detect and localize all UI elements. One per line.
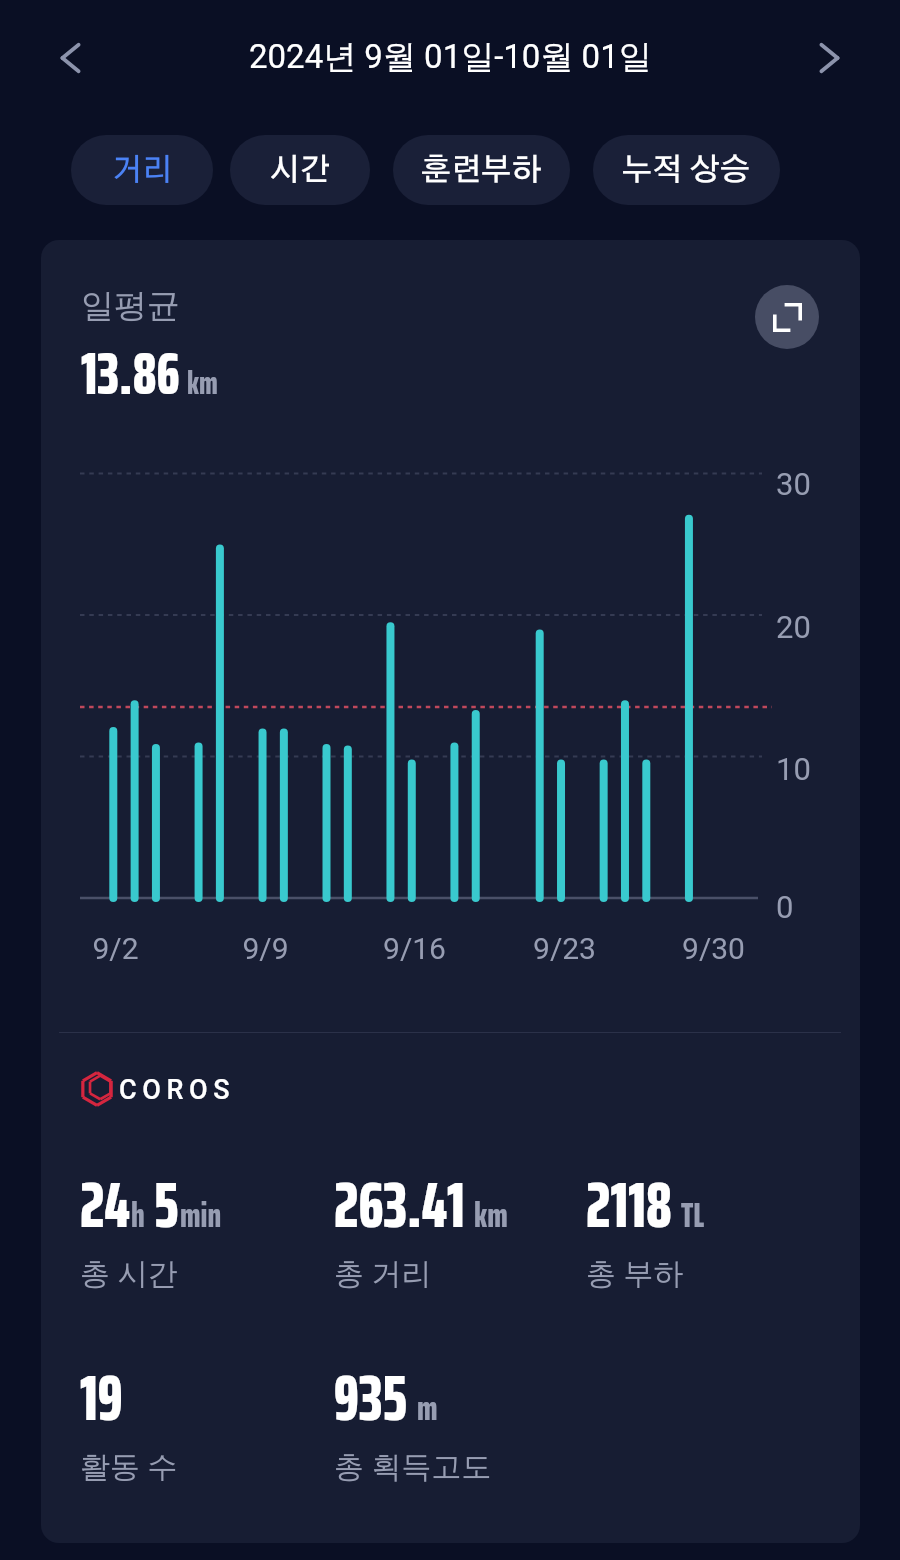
button[interactable]: 거리 (71, 135, 213, 205)
staticText: 총 부하 (586, 1255, 684, 1293)
staticText: 30 (776, 466, 811, 502)
staticText: 시간 (270, 155, 331, 186)
staticText: 9/16 (383, 931, 446, 966)
staticText: 총 시간 (80, 1255, 178, 1293)
button[interactable]: Next period (789, 22, 861, 94)
staticText: 935 (334, 1347, 408, 1448)
staticText: 10 (776, 751, 811, 787)
staticText: 누적 상승 (622, 155, 751, 186)
staticText: 총 거리 (334, 1255, 432, 1293)
button[interactable]: 시간 (230, 135, 370, 205)
button[interactable]: Expand chart (755, 285, 819, 349)
staticText: 263.41 (334, 1154, 465, 1255)
staticText: 9/2 (92, 931, 139, 966)
staticText: 2118 (586, 1154, 672, 1255)
staticText: 24 (80, 1154, 130, 1255)
staticText: 20 (776, 609, 811, 645)
staticText: 거리 (112, 155, 173, 186)
staticText: COROS (119, 1074, 236, 1106)
staticText: 9/30 (682, 931, 745, 966)
staticText: 0 (776, 889, 794, 925)
staticText: h (131, 1187, 145, 1242)
staticText: 9/23 (533, 931, 596, 966)
staticText: 19 (80, 1347, 123, 1448)
staticText: min (180, 1187, 222, 1242)
staticText: 13.86 (81, 327, 180, 420)
staticText: 2024년 9월 01일-10월 01일 (249, 36, 652, 78)
staticText: km (187, 358, 218, 408)
staticText: 9/9 (242, 931, 289, 966)
staticText: km (474, 1187, 508, 1242)
staticText: 활동 수 (80, 1448, 178, 1486)
staticText: 총 획득고도 (334, 1448, 492, 1486)
button[interactable]: 누적 상승 (593, 135, 780, 205)
button[interactable]: 훈련부하 (393, 135, 570, 205)
staticText: m (417, 1380, 438, 1435)
button[interactable]: Previous period (39, 22, 111, 94)
staticText: 훈련부하 (421, 155, 542, 186)
staticText: TL (681, 1187, 705, 1242)
staticText: 일평균 (81, 285, 180, 327)
staticText: 5 (154, 1154, 179, 1255)
